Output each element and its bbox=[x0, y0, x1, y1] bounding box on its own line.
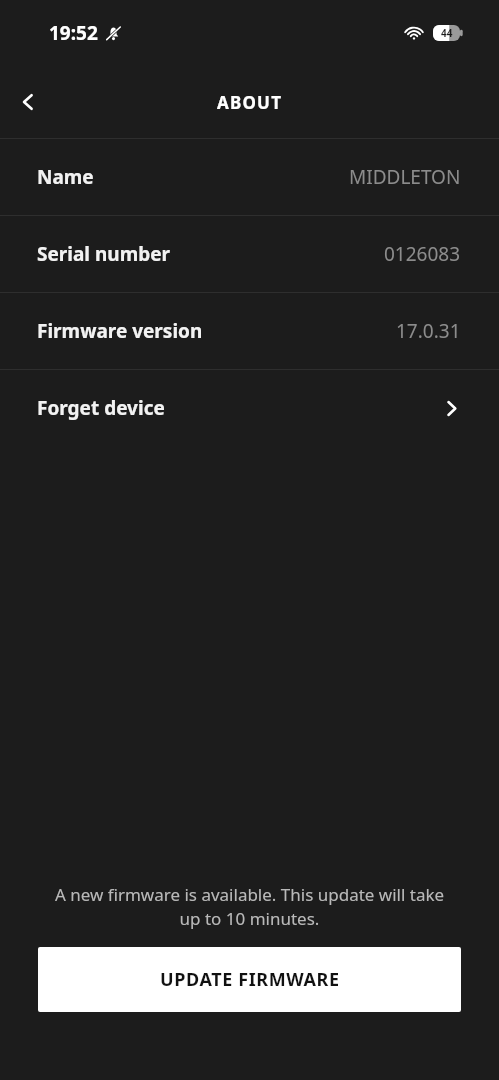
button[interactable]: Forget device bbox=[0, 370, 499, 446]
staticText: 17.0.31 bbox=[396, 318, 461, 344]
button[interactable]: Firmware version bbox=[0, 293, 499, 369]
staticText: 19:52 bbox=[49, 20, 98, 46]
button[interactable]: Serial number bbox=[0, 216, 499, 292]
button[interactable]: UPDATE FIRMWARE bbox=[38, 947, 461, 1012]
staticText: A new firmware is available. This update… bbox=[48, 883, 451, 930]
staticText: Serial number bbox=[37, 241, 171, 267]
staticText: 44 bbox=[441, 26, 453, 40]
staticText: Forget device bbox=[37, 395, 165, 421]
staticText: 0126083 bbox=[384, 241, 461, 267]
button[interactable]: Back bbox=[0, 74, 56, 130]
staticText: MIDDLETON bbox=[349, 164, 461, 190]
staticText: UPDATE FIRMWARE bbox=[160, 967, 340, 992]
staticText: ABOUT bbox=[217, 91, 283, 114]
staticText: Name bbox=[37, 164, 94, 190]
staticText: Firmware version bbox=[37, 318, 203, 344]
button[interactable]: Name bbox=[0, 139, 499, 215]
